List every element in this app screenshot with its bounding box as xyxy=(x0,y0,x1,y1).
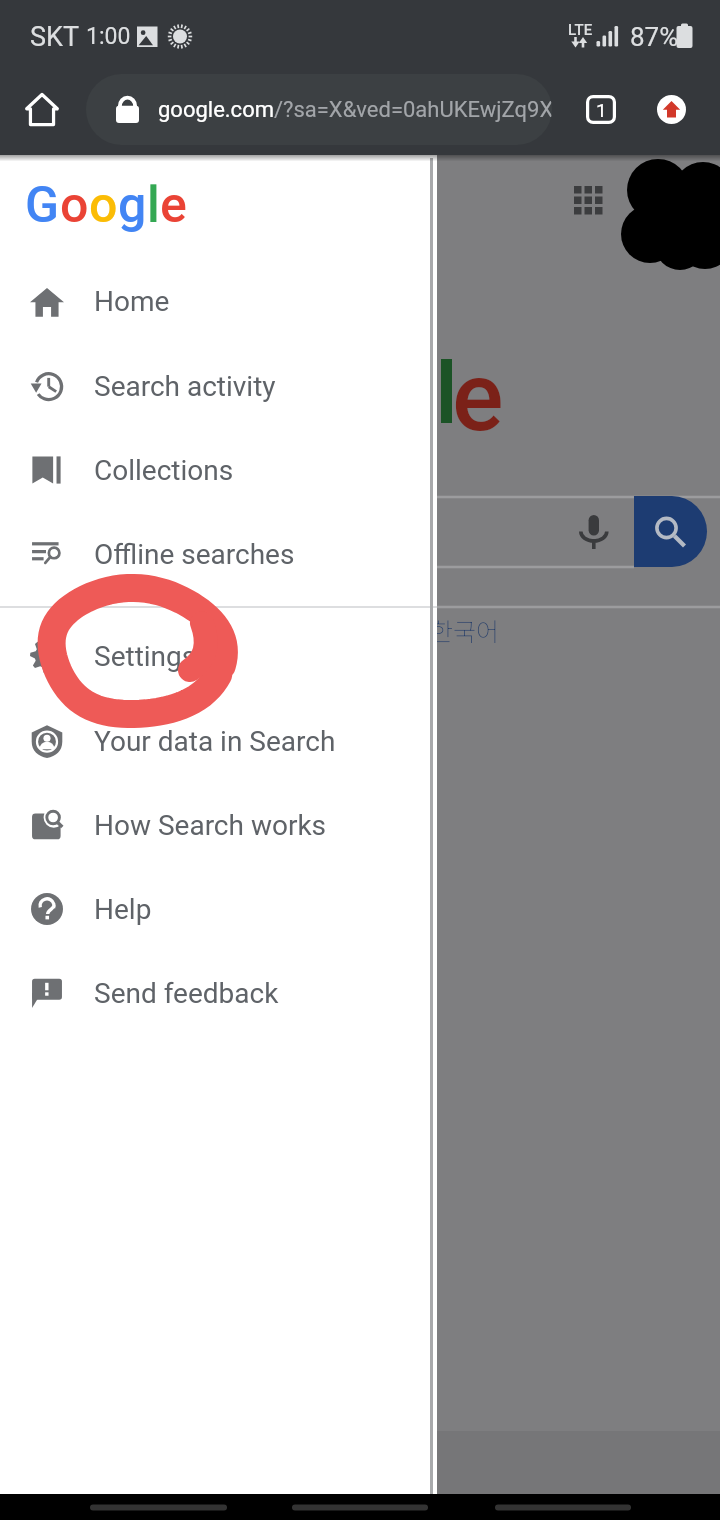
staticText: 87% xyxy=(630,22,679,52)
staticText: l xyxy=(147,176,160,235)
staticText: e xyxy=(452,341,504,454)
staticText: google.com/?sa=X&ved=0ahUKEwjZq9X xyxy=(158,97,552,123)
staticText: LTE xyxy=(568,21,593,39)
staticText: 1 xyxy=(596,99,607,121)
staticText: Help xyxy=(94,893,152,926)
staticText: 한국어 xyxy=(430,612,500,648)
button[interactable]: Collections xyxy=(0,428,437,512)
staticText: o xyxy=(89,176,118,235)
staticText: e xyxy=(160,176,187,235)
staticText: Home xyxy=(94,285,170,318)
staticText: SKT xyxy=(30,21,80,53)
staticText: g xyxy=(118,176,147,235)
button[interactable]: Settings xyxy=(0,614,437,698)
button[interactable]: Tabs xyxy=(571,79,631,139)
button[interactable]: Home xyxy=(4,71,80,147)
staticText: 1:00 xyxy=(86,23,131,50)
button[interactable]: Help xyxy=(0,867,437,951)
button[interactable]: Your data in Search xyxy=(0,699,437,783)
staticText: o xyxy=(60,176,89,235)
staticText: Your data in Search xyxy=(94,725,336,758)
button[interactable]: Home xyxy=(0,259,437,343)
button[interactable]: google.com/?sa=X&ved=0ahUKEwjZq9X xyxy=(86,74,552,145)
staticText: Settings xyxy=(94,640,197,673)
staticText: Collections xyxy=(94,454,234,487)
staticText: Send feedback xyxy=(94,977,279,1010)
staticText: How Search works xyxy=(94,809,327,842)
button[interactable]: Offline searches xyxy=(0,512,437,596)
staticText: Offline searches xyxy=(94,538,295,571)
button[interactable]: How Search works xyxy=(0,783,437,867)
staticText: G xyxy=(25,176,60,235)
button[interactable]: Search activity xyxy=(0,344,437,428)
staticText: Search activity xyxy=(94,370,276,403)
button[interactable]: Send feedback xyxy=(0,951,437,1035)
button[interactable]: Download update xyxy=(641,79,701,139)
